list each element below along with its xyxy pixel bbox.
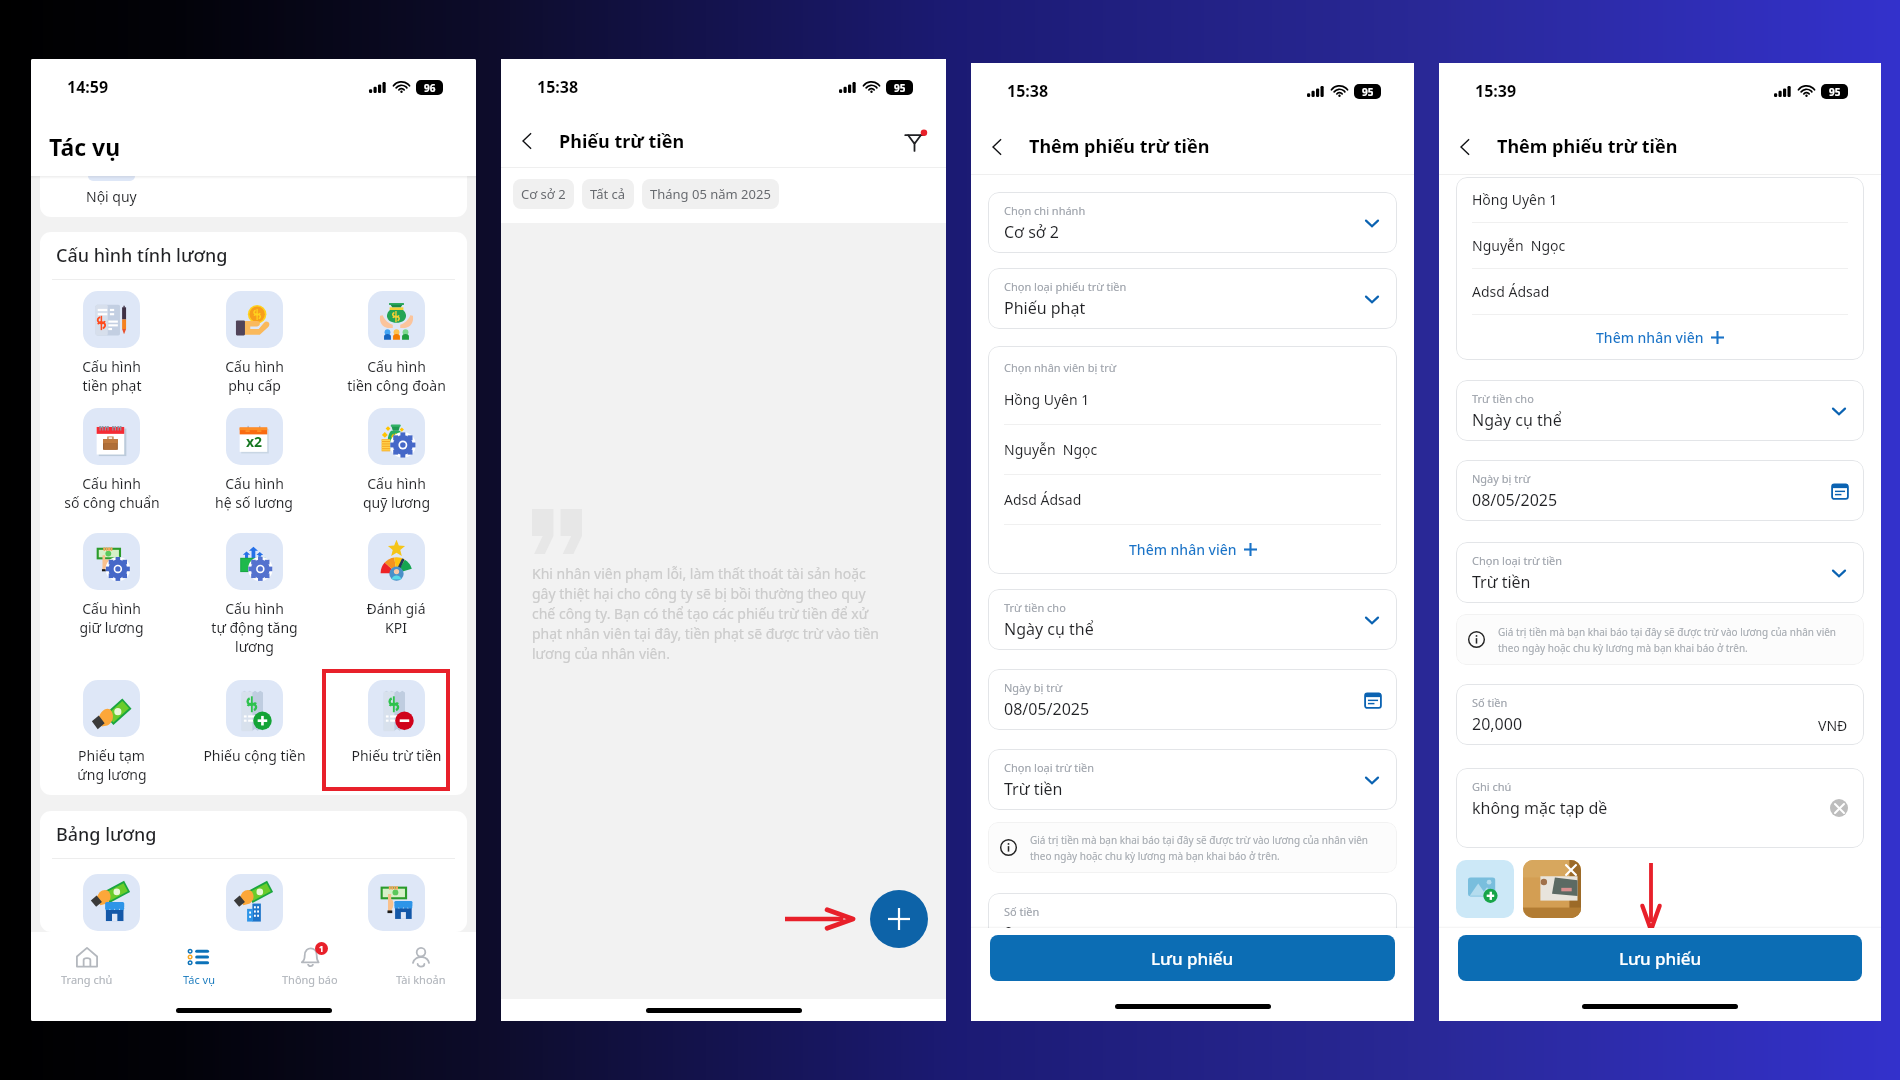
staticText: Cấu hình [82, 474, 141, 493]
staticText: 95 [1829, 85, 1841, 99]
staticText: Cấu hình [367, 357, 426, 376]
button[interactable]: Đánh giá [325, 522, 467, 637]
staticText: tiền công đoàn [347, 376, 446, 395]
staticText: Cấu hình tính lương [56, 243, 228, 268]
staticText: Phiếu tạm [78, 746, 145, 765]
staticText: Ghi chú [1472, 779, 1512, 794]
button[interactable]: Trừ tiền cho [1456, 380, 1864, 441]
staticText: 96 [424, 81, 436, 95]
button[interactable]: Clear [1830, 799, 1848, 817]
staticText: KPI [385, 618, 407, 637]
staticText: 14:59 [67, 76, 109, 98]
staticText: 08/05/2025 [1472, 489, 1558, 511]
button[interactable]: Cấu hình [40, 522, 183, 637]
staticText: Phiếu trừ tiền [351, 746, 442, 765]
staticText: 08/05/2025 [1004, 698, 1090, 720]
button[interactable]: Tất cả [582, 179, 634, 209]
button[interactable]: Ngày bị trừ [988, 669, 1397, 730]
button[interactable]: Phiếu cộng tiền [183, 669, 325, 765]
staticText: x2 [246, 432, 263, 451]
button[interactable]: 1 [254, 932, 365, 999]
staticText: Tháng 05 năm 2025 [650, 185, 771, 203]
staticText: Phiếu trừ tiền [559, 129, 685, 154]
staticText: Cơ sở 2 [521, 185, 566, 203]
staticText: giữ lương [79, 618, 144, 637]
staticText: 15:38 [1007, 80, 1049, 102]
button[interactable]: Cấu hình [40, 397, 183, 512]
button[interactable]: Cơ sở 2 [513, 179, 574, 209]
staticText: Ngày bị trừ [1004, 680, 1063, 695]
staticText: Chọn loại trừ tiền [1004, 760, 1095, 775]
staticText: Trừ tiền cho [1472, 391, 1534, 406]
staticText: 0 [1004, 922, 1351, 944]
button[interactable]: Tháng 05 năm 2025 [642, 179, 779, 209]
button[interactable]: Trừ tiền cho [988, 589, 1397, 650]
button[interactable]: Back [982, 132, 1012, 162]
staticText: Hồng Uyên 1 [1004, 390, 1090, 409]
staticText: Trừ tiền [1472, 571, 1531, 593]
staticText: Giá trị tiền mà bạn khai báo tại đây sẽ … [1030, 833, 1369, 862]
staticText: Số tiền [1004, 904, 1040, 919]
button[interactable]: Cấu hình [40, 280, 183, 395]
button[interactable]: Phiếu trừ tiền [325, 669, 467, 765]
staticText: Tất cả [590, 185, 626, 203]
button[interactable]: Phiếu tạm [40, 669, 183, 784]
staticText: Thông báo [282, 972, 338, 987]
staticText: phụ cấp [228, 376, 281, 395]
staticText: số công chuẩn [64, 493, 160, 512]
staticText: Chọn chi nhánh [1004, 203, 1086, 218]
staticText: Phiếu phạt [1004, 297, 1086, 319]
staticText: ứng lương [77, 765, 147, 784]
button[interactable]: Chọn chi nhánh [988, 192, 1397, 253]
button[interactable]: Back [512, 126, 542, 156]
staticText: Adsd Ádsad [1004, 490, 1082, 509]
button[interactable]: Filter [899, 126, 929, 156]
button[interactable]: Cấu hình [183, 280, 325, 395]
staticText: Chọn loại phiếu trừ tiền [1004, 279, 1127, 294]
button[interactable]: Tác vụ [143, 932, 254, 999]
button[interactable]: Ngày bị trừ [1456, 460, 1864, 521]
button[interactable]: Chọn loại trừ tiền [988, 749, 1397, 810]
staticText: Thêm nhân viên [1596, 328, 1704, 347]
staticText: Thêm phiếu trừ tiền [1497, 134, 1678, 159]
button[interactable]: Trang chủ [31, 932, 143, 999]
button[interactable]: Add [870, 890, 928, 948]
staticText: VNĐ [1818, 716, 1848, 735]
button[interactable]: Lưu phiếu [990, 935, 1395, 981]
button[interactable]: Back [1450, 132, 1480, 162]
button[interactable]: Tài khoản [365, 932, 476, 999]
staticText: Chọn loại trừ tiền [1472, 553, 1563, 568]
staticText: 95 [894, 81, 906, 95]
staticText: 15:38 [537, 76, 579, 98]
staticText: Nội quy [86, 187, 137, 206]
button[interactable]: Lưu phiếu [1458, 935, 1862, 981]
staticText: Nguyễn Ngọc [1004, 440, 1098, 459]
button[interactable]: Cấu hình [183, 522, 325, 656]
button[interactable]: Thêm nhân viên [1472, 315, 1848, 360]
button[interactable]: Chọn loại trừ tiền [1456, 542, 1864, 603]
staticText: Cấu hình [225, 474, 284, 493]
staticText: Số tiền [1472, 695, 1508, 710]
staticText: Cấu hình [225, 599, 284, 618]
staticText: 1 [319, 943, 324, 954]
staticText: Thêm phiếu trừ tiền [1029, 134, 1210, 159]
button[interactable]: Chọn loại phiếu trừ tiền [988, 268, 1397, 329]
button[interactable]: Add photo [1456, 860, 1514, 918]
button[interactable]: Cấu hình [325, 397, 467, 512]
staticText: Cơ sở 2 [1004, 221, 1059, 243]
staticText: Ngày cụ thể [1472, 409, 1562, 431]
button[interactable]: Remove photo [1563, 862, 1579, 878]
staticText: Trừ tiền cho [1004, 600, 1066, 615]
staticText: không mặc tạp dề [1472, 797, 1830, 819]
staticText: 20,000 [1472, 713, 1818, 735]
button[interactable]: x2 [183, 397, 325, 512]
staticText: Lưu phiếu [1619, 947, 1702, 970]
staticText: Tài khoản [396, 972, 446, 987]
button[interactable]: Thêm nhân viên [1004, 525, 1381, 574]
staticText: lương [235, 637, 274, 656]
button[interactable]: Cấu hình [325, 280, 467, 395]
staticText: Trang chủ [61, 972, 113, 987]
staticText: Tác vụ [49, 131, 121, 162]
staticText: Giá trị tiền mà bạn khai báo tại đây sẽ … [1498, 625, 1837, 654]
staticText: tự động tăng [211, 618, 298, 637]
